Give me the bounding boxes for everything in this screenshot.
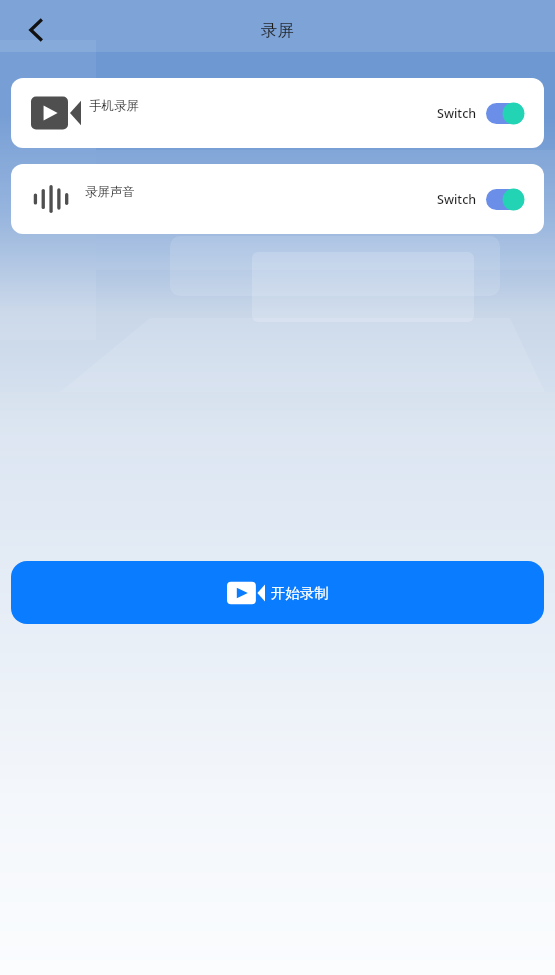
staticText: 手机录屏 bbox=[89, 98, 139, 114]
staticText: 开始录制 bbox=[271, 584, 329, 602]
staticText: 录屏 bbox=[261, 20, 294, 41]
button[interactable]: 手机录屏 bbox=[11, 78, 544, 148]
button[interactable]: 录屏声音 bbox=[11, 164, 544, 234]
staticText: 录屏声音 bbox=[85, 184, 135, 200]
button[interactable]: Back bbox=[12, 6, 60, 54]
staticText: Switch bbox=[437, 105, 477, 122]
button[interactable]: Toggle bbox=[486, 103, 524, 124]
staticText: Switch bbox=[437, 191, 477, 208]
button[interactable]: 开始录制 bbox=[11, 561, 544, 624]
button[interactable]: Toggle bbox=[486, 189, 524, 210]
